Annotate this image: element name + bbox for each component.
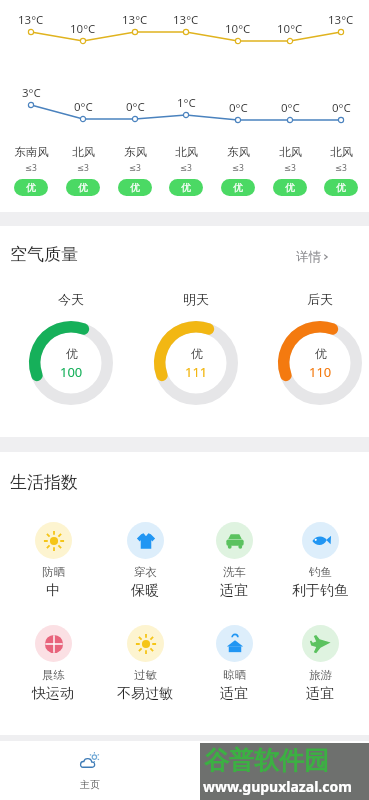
- staticText: 快运动: [32, 685, 74, 703]
- button[interactable]: 主页: [58, 741, 122, 800]
- staticText: 明天: [166, 291, 226, 307]
- button[interactable]: 穿衣: [100, 522, 190, 600]
- staticText: 优: [336, 181, 346, 194]
- staticText: 北风: [330, 145, 353, 159]
- staticText: 10°C: [225, 21, 251, 37]
- staticText: 优: [78, 181, 88, 194]
- staticText: 1°C: [177, 95, 196, 111]
- button[interactable]: 旅游: [275, 625, 365, 703]
- staticText: ≤3: [335, 162, 347, 174]
- button[interactable]: 北风: [264, 145, 316, 196]
- staticText: 过敏: [134, 668, 157, 682]
- button[interactable]: 东南风: [5, 145, 57, 196]
- staticText: 13°C: [18, 12, 44, 28]
- staticText: 晾晒: [223, 668, 246, 682]
- staticText: 防晒: [42, 565, 65, 579]
- staticText: 后天: [290, 291, 350, 307]
- staticText: 优: [66, 346, 78, 361]
- staticText: 0°C: [126, 99, 145, 115]
- button[interactable]: 详情: [296, 249, 331, 265]
- staticText: 优: [315, 346, 327, 361]
- staticText: 110: [309, 363, 332, 381]
- button[interactable]: 晨练: [8, 625, 98, 703]
- staticText: 0°C: [229, 100, 248, 116]
- staticText: 生活指数: [10, 472, 78, 493]
- button[interactable]: 东风: [109, 145, 161, 196]
- staticText: 优: [191, 346, 203, 361]
- staticText: 优: [181, 181, 191, 194]
- staticText: 10°C: [70, 21, 96, 37]
- staticText: ≤3: [25, 162, 37, 174]
- staticText: 空气质量: [10, 244, 78, 265]
- button[interactable]: 晾晒: [189, 625, 279, 703]
- staticText: ≤3: [129, 162, 141, 174]
- staticText: 优: [285, 181, 295, 194]
- staticText: 13°C: [122, 12, 148, 28]
- staticText: 不易过敏: [117, 685, 173, 703]
- staticText: ≤3: [77, 162, 89, 174]
- button[interactable]: 防晒: [8, 522, 98, 600]
- button[interactable]: 优: [27, 319, 115, 407]
- staticText: ≤3: [180, 162, 192, 174]
- staticText: 适宜: [220, 685, 248, 703]
- staticText: 111: [185, 363, 208, 381]
- staticText: 洗车: [223, 565, 246, 579]
- staticText: 13°C: [328, 12, 354, 28]
- staticText: 优: [26, 181, 36, 194]
- staticText: 北风: [72, 145, 95, 159]
- staticText: 晨练: [42, 668, 65, 682]
- button[interactable]: 钓鱼: [275, 522, 365, 600]
- staticText: ≤3: [232, 162, 244, 174]
- button[interactable]: 北风: [160, 145, 212, 196]
- staticText: 东风: [227, 145, 250, 159]
- staticText: ≤3: [284, 162, 296, 174]
- staticText: 穿衣: [134, 565, 157, 579]
- staticText: 适宜: [306, 685, 334, 703]
- staticText: 钓鱼: [309, 565, 332, 579]
- staticText: 谷普软件园: [204, 745, 329, 776]
- staticText: 优: [130, 181, 140, 194]
- staticText: 东南风: [14, 145, 49, 159]
- staticText: 0°C: [332, 100, 351, 116]
- staticText: 今天: [41, 291, 101, 307]
- staticText: 东风: [124, 145, 147, 159]
- staticText: 保暖: [131, 582, 159, 600]
- staticText: 北风: [279, 145, 302, 159]
- button[interactable]: 北风: [57, 145, 109, 196]
- staticText: www.gupuxlazal.com: [203, 777, 352, 796]
- staticText: 13°C: [173, 12, 199, 28]
- button[interactable]: 东风: [212, 145, 264, 196]
- staticText: 详情: [296, 249, 321, 265]
- staticText: 100: [60, 363, 83, 381]
- staticText: 0°C: [281, 100, 300, 116]
- staticText: 利于钓鱼: [292, 582, 348, 600]
- staticText: 主页: [80, 778, 100, 791]
- staticText: 10°C: [277, 21, 303, 37]
- button[interactable]: 优: [152, 319, 240, 407]
- button[interactable]: 北风: [315, 145, 367, 196]
- staticText: 3°C: [22, 85, 41, 101]
- button[interactable]: 优: [276, 319, 364, 407]
- staticText: 适宜: [220, 582, 248, 600]
- staticText: 优: [233, 181, 243, 194]
- staticText: 0°C: [74, 99, 93, 115]
- staticText: 北风: [175, 145, 198, 159]
- button[interactable]: 洗车: [189, 522, 279, 600]
- button[interactable]: 过敏: [100, 625, 190, 703]
- staticText: 中: [46, 582, 60, 600]
- staticText: 旅游: [309, 668, 332, 682]
